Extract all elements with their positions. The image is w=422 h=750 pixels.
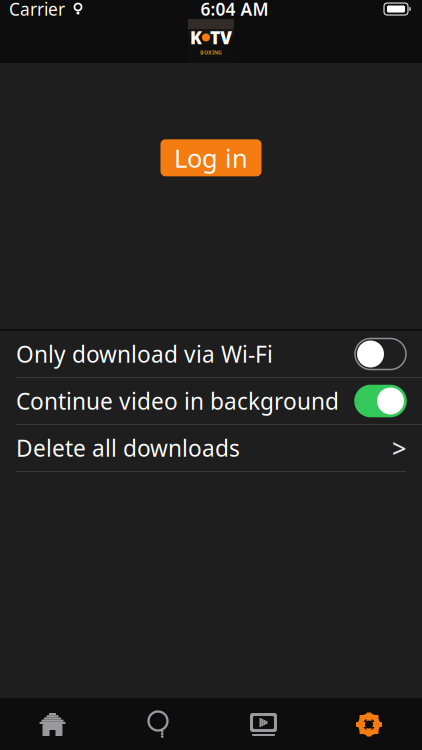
button[interactable]: Only download via Wi-Fi bbox=[0, 331, 422, 377]
button[interactable]: Delete all downloads bbox=[0, 425, 422, 471]
staticText: Only download via Wi-Fi bbox=[16, 339, 273, 369]
button[interactable]: Settings bbox=[316, 698, 422, 750]
staticText: 6:04 AM bbox=[200, 0, 268, 20]
staticText: TV bbox=[210, 26, 232, 49]
staticText: BOXING bbox=[200, 49, 222, 56]
staticText: Delete all downloads bbox=[16, 433, 240, 463]
button[interactable]: Log in bbox=[160, 139, 261, 176]
staticText: > bbox=[392, 431, 406, 465]
staticText: Log in bbox=[174, 141, 248, 175]
button[interactable]: Search bbox=[105, 698, 211, 750]
button[interactable]: Home bbox=[0, 698, 105, 750]
staticText: Carrier bbox=[9, 0, 65, 20]
staticText: K bbox=[190, 26, 202, 49]
staticText: Continue video in background bbox=[16, 386, 339, 416]
button[interactable]: Videos bbox=[211, 698, 316, 750]
button[interactable]: Continue video in background bbox=[0, 378, 422, 424]
